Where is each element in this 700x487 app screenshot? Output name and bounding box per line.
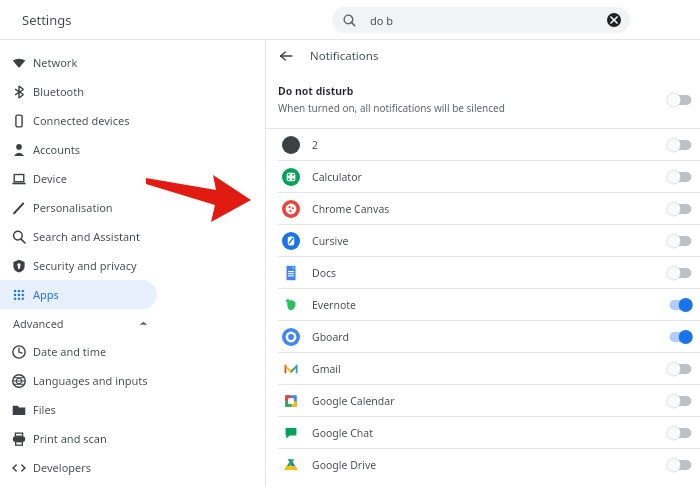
staticText: do b [370, 13, 394, 28]
staticText: Developers [33, 460, 92, 475]
button[interactable]: Toggle on [667, 329, 693, 345]
button[interactable]: Languages and inputs [0, 366, 157, 395]
staticText: Google Calendar [312, 394, 395, 408]
staticText: Network [33, 55, 78, 70]
button[interactable]: Toggle off [667, 393, 693, 409]
staticText: 2 [312, 138, 319, 152]
staticText: Evernote [312, 298, 356, 312]
staticText: Connected devices [33, 113, 130, 128]
button[interactable]: Clear search [607, 13, 621, 27]
button[interactable]: Toggle off [667, 201, 693, 217]
staticText: Date and time [33, 344, 107, 359]
staticText: Languages and inputs [33, 373, 148, 388]
staticText: Chrome Canvas [312, 202, 390, 216]
button[interactable]: do b [332, 7, 630, 33]
button[interactable]: Toggle off [667, 425, 693, 441]
staticText: Search and Assistant [33, 229, 140, 244]
button[interactable]: Accounts [0, 135, 157, 164]
button[interactable]: Developers [0, 453, 157, 482]
button[interactable]: Date and time [0, 337, 157, 366]
button[interactable]: Toggle off [667, 137, 693, 153]
staticText: Gmail [312, 362, 341, 376]
button[interactable]: Print and scan [0, 424, 157, 453]
button[interactable]: Gmail [266, 353, 700, 384]
button[interactable]: Gboard [266, 321, 700, 352]
staticText: Calculator [312, 170, 362, 184]
button[interactable]: Search and Assistant [0, 222, 157, 251]
button[interactable]: Docs [266, 257, 700, 288]
staticText: Do not disturb [278, 84, 354, 98]
button[interactable]: Personalisation [0, 193, 157, 222]
staticText: Docs [312, 266, 337, 280]
button[interactable]: Chrome Canvas [266, 193, 700, 224]
button[interactable]: Do not disturb [266, 71, 700, 128]
button[interactable]: Google Drive [266, 449, 700, 480]
button[interactable]: Toggle on [667, 297, 693, 313]
button[interactable]: Files [0, 395, 157, 424]
staticText: Settings [22, 11, 72, 29]
staticText: Accounts [33, 142, 81, 157]
staticText: Files [33, 402, 56, 417]
button[interactable]: Evernote [266, 289, 700, 320]
staticText: Google Chat [312, 426, 373, 440]
button[interactable]: Calculator [266, 161, 700, 192]
button[interactable]: Google Chat [266, 417, 700, 448]
button[interactable]: Toggle off [667, 233, 693, 249]
staticText: Gboard [312, 330, 349, 344]
staticText: Personalisation [33, 200, 113, 215]
button[interactable]: Toggle off [667, 457, 693, 473]
staticText: Bluetooth [33, 84, 85, 99]
staticText: When turned on, all notifications will b… [278, 101, 505, 115]
button[interactable]: Toggle off [667, 265, 693, 281]
staticText: Device [33, 171, 67, 186]
button[interactable]: 2 [266, 129, 700, 160]
other: Collapse advanced [138, 318, 149, 329]
button[interactable]: Toggle off [667, 169, 693, 185]
staticText: Print and scan [33, 431, 107, 446]
staticText: Advanced [13, 316, 64, 331]
button[interactable]: Apps [0, 280, 157, 309]
staticText: Google Drive [312, 458, 377, 472]
button[interactable]: Google Calendar [266, 385, 700, 416]
staticText: Apps [33, 287, 59, 302]
button[interactable]: Cursive [266, 225, 700, 256]
button[interactable]: Toggle off [667, 361, 693, 377]
staticText: Cursive [312, 234, 349, 248]
button[interactable]: Back [277, 47, 295, 65]
button[interactable]: Connected devices [0, 106, 157, 135]
button[interactable]: Device [0, 164, 157, 193]
button[interactable]: Toggle off [667, 92, 693, 108]
button[interactable]: Security and privacy [0, 251, 157, 280]
staticText: Security and privacy [33, 258, 137, 273]
button[interactable]: Bluetooth [0, 77, 157, 106]
staticText: Notifications [310, 48, 379, 64]
button[interactable]: Network [0, 48, 157, 77]
